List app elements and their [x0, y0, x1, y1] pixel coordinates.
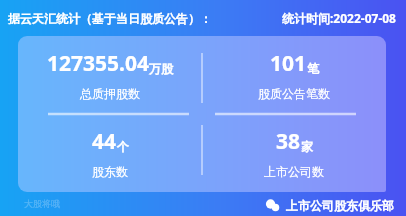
staticText: 股东数 [92, 164, 128, 179]
button[interactable]: 38 [202, 114, 386, 192]
staticText: 大股将哦 [24, 198, 60, 209]
staticText: 个 [117, 139, 129, 154]
staticText: 总质押股数 [80, 86, 140, 101]
staticText: 44 [92, 127, 117, 156]
staticText: 股质公告笔数 [258, 86, 330, 101]
staticText: 上市公司数 [264, 164, 324, 179]
staticText: 家 [301, 139, 313, 154]
staticText: 统计时间:2022-07-08 [282, 10, 396, 26]
staticText: 127355.04 [47, 49, 149, 78]
staticText: 笔 [307, 61, 319, 76]
staticText: 38 [276, 127, 301, 156]
staticText: 上市公司股东俱乐部 [286, 198, 394, 213]
staticText: 101 [270, 49, 307, 78]
button[interactable]: 上市公司股东俱乐部 [265, 198, 394, 213]
button[interactable]: 127355.04 [18, 36, 202, 114]
staticText: 据云天汇统计（基于当日股质公告）： [8, 11, 212, 26]
button[interactable]: 44 [18, 114, 202, 192]
staticText: 万股 [149, 61, 173, 76]
button[interactable]: 101 [202, 36, 386, 114]
